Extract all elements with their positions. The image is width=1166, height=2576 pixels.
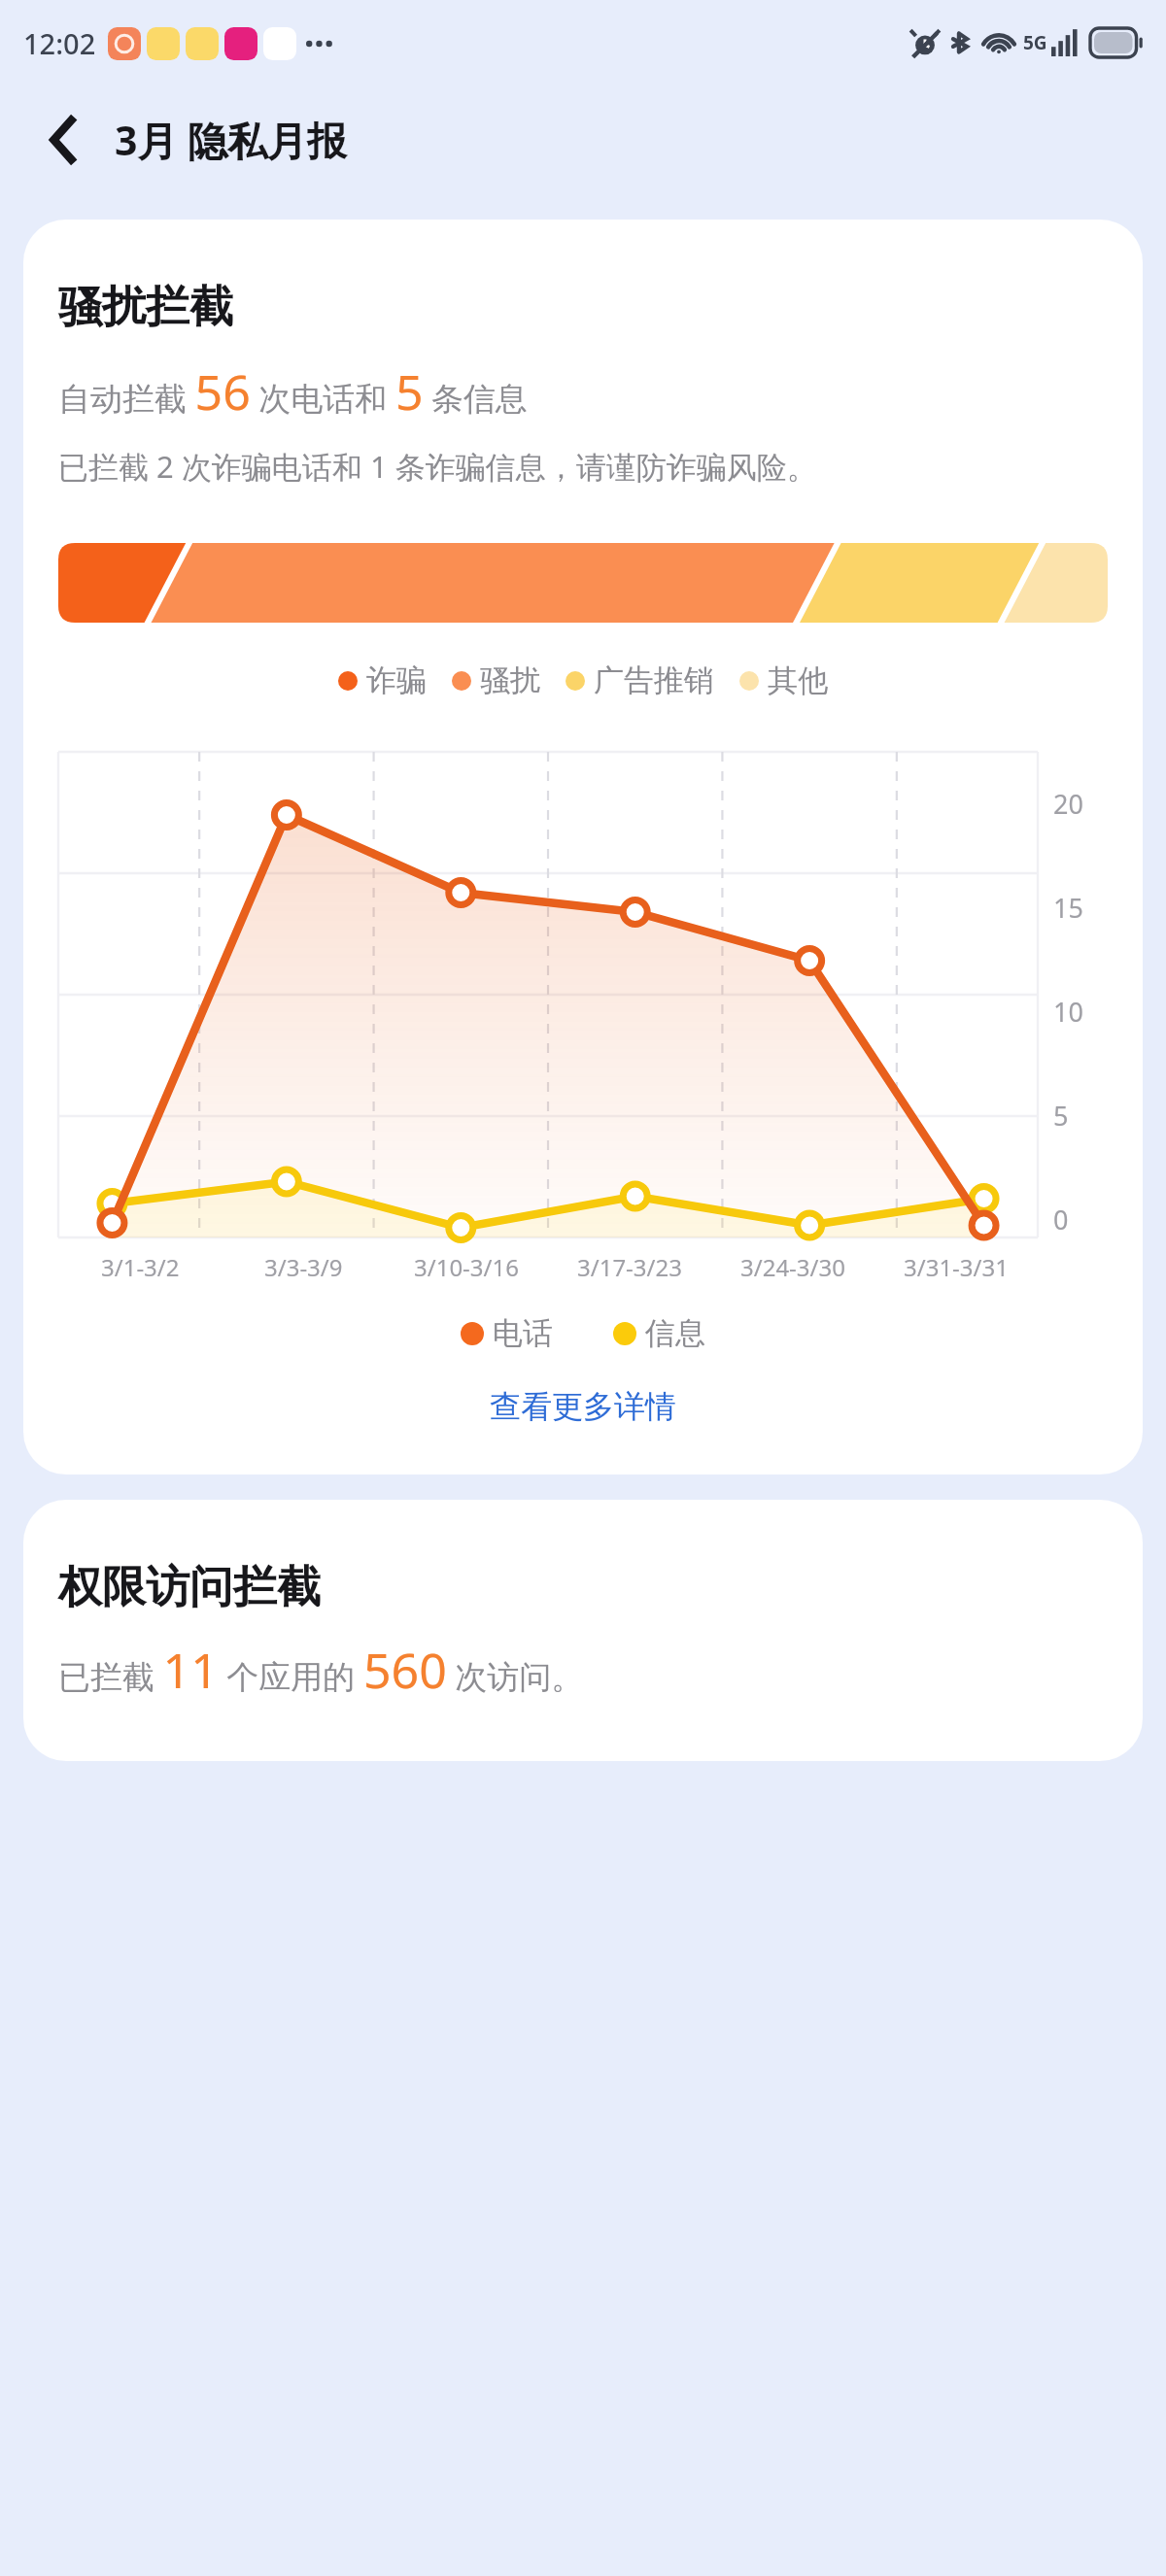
staticText: 5G bbox=[1023, 30, 1047, 55]
staticText: 3/24-3/30 bbox=[740, 1251, 845, 1283]
staticText: 已拦截 2 次诈骗电话和 1 条诈骗信息，请谨防诈骗风险。 bbox=[58, 446, 817, 487]
staticText: 权限访问拦截 bbox=[58, 1560, 321, 1615]
staticText: 12:02 bbox=[23, 24, 96, 62]
button[interactable]: 查看更多详情 bbox=[480, 1381, 686, 1432]
staticText: 15 bbox=[1053, 890, 1083, 926]
staticText: 已拦截 11 个应用的 560 次访问。 bbox=[58, 1637, 584, 1703]
staticText: 查看更多详情 bbox=[490, 1387, 676, 1426]
staticText: 3/17-3/23 bbox=[577, 1251, 682, 1283]
staticText: 20 bbox=[1053, 786, 1083, 822]
staticText: 其他 bbox=[768, 661, 828, 699]
staticText: 自动拦截 56 次电话和 5 条信息 bbox=[58, 358, 529, 424]
staticText: 3/31-3/31 bbox=[904, 1251, 1009, 1283]
staticText: 电话 bbox=[493, 1314, 553, 1352]
staticText: 3/10-3/16 bbox=[414, 1251, 519, 1283]
button[interactable]: Back bbox=[25, 102, 101, 178]
staticText: 0 bbox=[1053, 1202, 1069, 1237]
staticText: 骚扰拦截 bbox=[58, 280, 233, 335]
staticText: 3月 隐私月报 bbox=[115, 113, 348, 167]
staticText: 5 bbox=[1053, 1098, 1069, 1134]
staticText: 信息 bbox=[645, 1314, 705, 1352]
staticText: 诈骗 bbox=[366, 661, 427, 699]
staticText: 广告推销 bbox=[594, 661, 714, 699]
staticText: 3/1-3/2 bbox=[101, 1251, 180, 1283]
staticText: 3/3-3/9 bbox=[264, 1251, 343, 1283]
staticText: 骚扰 bbox=[480, 661, 540, 699]
staticText: 10 bbox=[1053, 994, 1083, 1030]
